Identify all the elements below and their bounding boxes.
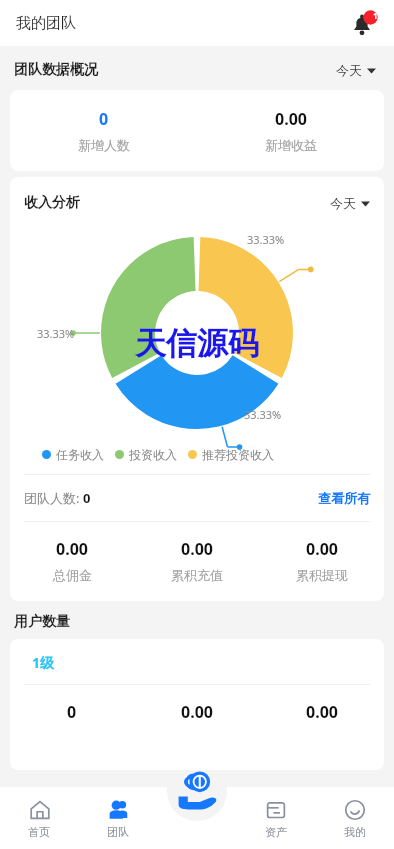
staticText: 0.00: [275, 108, 307, 130]
staticText: 资产: [265, 825, 287, 839]
staticText: 0: [67, 701, 77, 723]
button[interactable]: 首页: [0, 787, 78, 849]
staticText: 累积提现: [296, 567, 348, 583]
staticText: 33.33%: [244, 407, 282, 422]
staticText: 团队人数:: [24, 489, 83, 507]
button[interactable]: Notifications: [348, 7, 380, 39]
button[interactable]: 1级: [10, 639, 69, 684]
staticText: 33.33%: [247, 232, 285, 247]
staticText: 天信源码: [135, 324, 259, 363]
staticText: 查看所有: [318, 490, 370, 506]
staticText: 0.00: [306, 538, 338, 560]
staticText: 0.00: [181, 701, 213, 723]
button[interactable]: 今天: [332, 58, 380, 82]
staticText: 今天: [330, 195, 356, 211]
staticText: 用户数量: [14, 613, 70, 631]
staticText: 0.00: [181, 538, 213, 560]
staticText: 投资收入: [129, 447, 177, 462]
staticText: 新增收益: [265, 137, 317, 153]
button[interactable]: 资产: [236, 787, 315, 849]
staticText: 1级: [32, 653, 55, 672]
staticText: 首页: [28, 825, 50, 839]
button[interactable]: 我的: [315, 787, 394, 849]
staticText: 累积充值: [171, 567, 223, 583]
staticText: 今天: [336, 62, 362, 78]
staticText: 33.33%: [37, 326, 75, 341]
staticText: 新增人数: [78, 137, 130, 153]
staticText: 1: [373, 10, 378, 21]
button[interactable]: Earn money: [171, 765, 223, 817]
staticText: 0: [99, 108, 109, 130]
staticText: 0.00: [306, 701, 338, 723]
staticText: 我的: [344, 825, 366, 839]
staticText: 我的团队: [16, 14, 76, 33]
button[interactable]: 团队: [78, 787, 157, 849]
staticText: 团队数据概况: [14, 61, 98, 79]
button[interactable]: 今天: [326, 191, 374, 215]
staticText: 收入分析: [24, 194, 80, 212]
staticText: 团队: [107, 825, 129, 839]
staticText: 任务收入: [56, 447, 104, 462]
staticText: 0: [83, 489, 91, 507]
button[interactable]: 团队人数:: [10, 475, 384, 521]
staticText: 0.00: [56, 538, 88, 560]
staticText: 总佣金: [53, 567, 92, 583]
staticText: 推荐投资收入: [202, 447, 274, 462]
